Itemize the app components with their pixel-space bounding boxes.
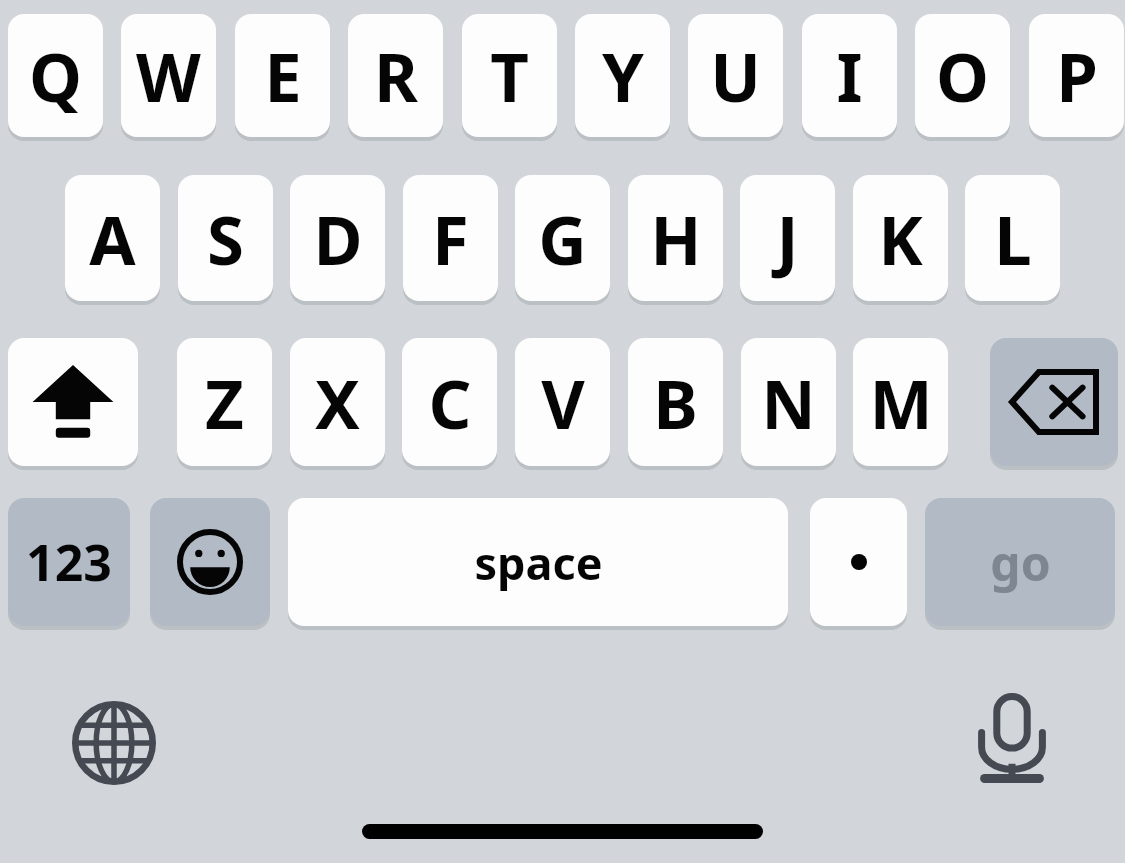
button[interactable]: Y [575, 14, 670, 137]
button[interactable]: E [235, 14, 330, 137]
staticText: R [374, 30, 418, 121]
button[interactable]: space [288, 498, 788, 626]
staticText: B [653, 357, 698, 448]
button[interactable]: M [853, 338, 948, 466]
button[interactable]: go [925, 498, 1115, 626]
staticText: space [474, 532, 603, 593]
button[interactable]: W [121, 14, 216, 137]
staticText: U [710, 30, 761, 121]
staticText: go [990, 530, 1051, 595]
staticText: X [315, 357, 360, 448]
button[interactable]: P [1029, 14, 1124, 137]
staticText: K [878, 193, 923, 284]
staticText: M [869, 357, 933, 448]
button[interactable]: Period [810, 498, 907, 626]
button[interactable]: Shift [8, 338, 138, 466]
staticText: Z [205, 357, 244, 448]
button[interactable]: K [853, 175, 948, 301]
staticText: S [207, 193, 244, 284]
button[interactable]: Voice input [962, 688, 1062, 788]
button[interactable]: O [915, 14, 1010, 137]
button[interactable]: T [462, 14, 557, 137]
staticText: O [936, 30, 989, 121]
staticText: P [1056, 30, 1098, 121]
staticText: A [89, 193, 136, 284]
button[interactable]: X [290, 338, 385, 466]
staticText: F [432, 193, 469, 284]
button[interactable]: Backspace [990, 338, 1118, 466]
button[interactable]: D [290, 175, 385, 301]
button[interactable]: R [348, 14, 443, 137]
button[interactable]: F [403, 175, 498, 301]
button[interactable]: Switch language [64, 693, 164, 793]
staticText: C [428, 357, 472, 448]
button[interactable]: J [740, 175, 835, 301]
button[interactable]: S [178, 175, 273, 301]
staticText: E [264, 30, 302, 121]
staticText: I [836, 30, 863, 121]
staticText: T [490, 30, 529, 121]
staticText: V [541, 357, 585, 448]
staticText: Q [29, 30, 82, 121]
staticText: W [136, 30, 201, 121]
button[interactable]: N [741, 338, 836, 466]
staticText: L [994, 193, 1032, 284]
staticText: D [313, 193, 363, 284]
button[interactable]: H [628, 175, 723, 301]
button[interactable]: V [515, 338, 610, 466]
staticText: Y [602, 30, 644, 121]
button[interactable]: Emoji [150, 498, 270, 626]
staticText: H [650, 193, 702, 284]
button[interactable]: C [402, 338, 497, 466]
staticText: N [761, 357, 816, 448]
button[interactable]: Z [177, 338, 272, 466]
button[interactable]: U [688, 14, 783, 137]
staticText: J [776, 193, 799, 284]
staticText: 123 [26, 528, 112, 596]
button[interactable]: I [802, 14, 897, 137]
staticText: G [538, 193, 587, 284]
button[interactable]: 123 [8, 498, 130, 626]
button[interactable]: B [628, 338, 723, 466]
button[interactable]: G [515, 175, 610, 301]
button[interactable]: A [65, 175, 160, 301]
button[interactable]: L [965, 175, 1060, 301]
button[interactable]: Q [8, 14, 103, 137]
